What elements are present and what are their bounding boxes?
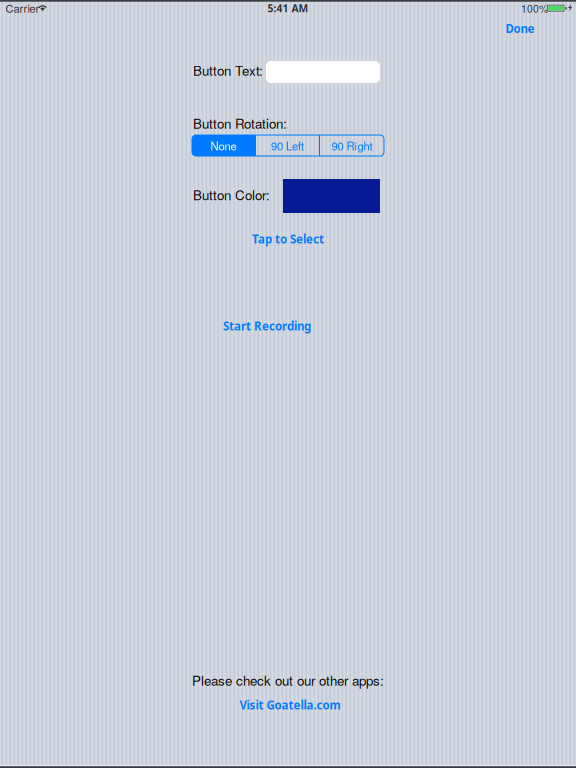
staticText: Button Color:: [193, 185, 270, 204]
staticText: Button Text:: [193, 60, 263, 80]
button[interactable]: Start Recording: [197, 315, 337, 337]
staticText: Done: [505, 21, 534, 36]
button[interactable]: Visit Goatella.com: [210, 696, 370, 714]
staticText: Tap to Select: [252, 231, 324, 247]
staticText: Visit Goatella.com: [239, 697, 340, 713]
staticText: 90 Left: [271, 137, 304, 154]
button[interactable]: Tap to Select: [228, 228, 348, 250]
button[interactable]: Done: [491, 15, 549, 41]
staticText: 90 Right: [331, 137, 372, 154]
button[interactable]: 90 Right: [320, 135, 384, 156]
staticText: 100%: [521, 1, 548, 16]
button[interactable]: None: [192, 135, 255, 156]
staticText: Please check out our other apps:: [192, 670, 384, 690]
staticText: 5:41 AM: [267, 1, 308, 15]
button[interactable]: 90 Left: [256, 135, 319, 156]
staticText: Start Recording: [223, 318, 311, 334]
staticText: Button Rotation:: [193, 113, 287, 133]
staticText: Carrier: [5, 0, 39, 16]
staticText: None: [210, 137, 236, 154]
button[interactable]: Button Text field: [266, 61, 380, 83]
